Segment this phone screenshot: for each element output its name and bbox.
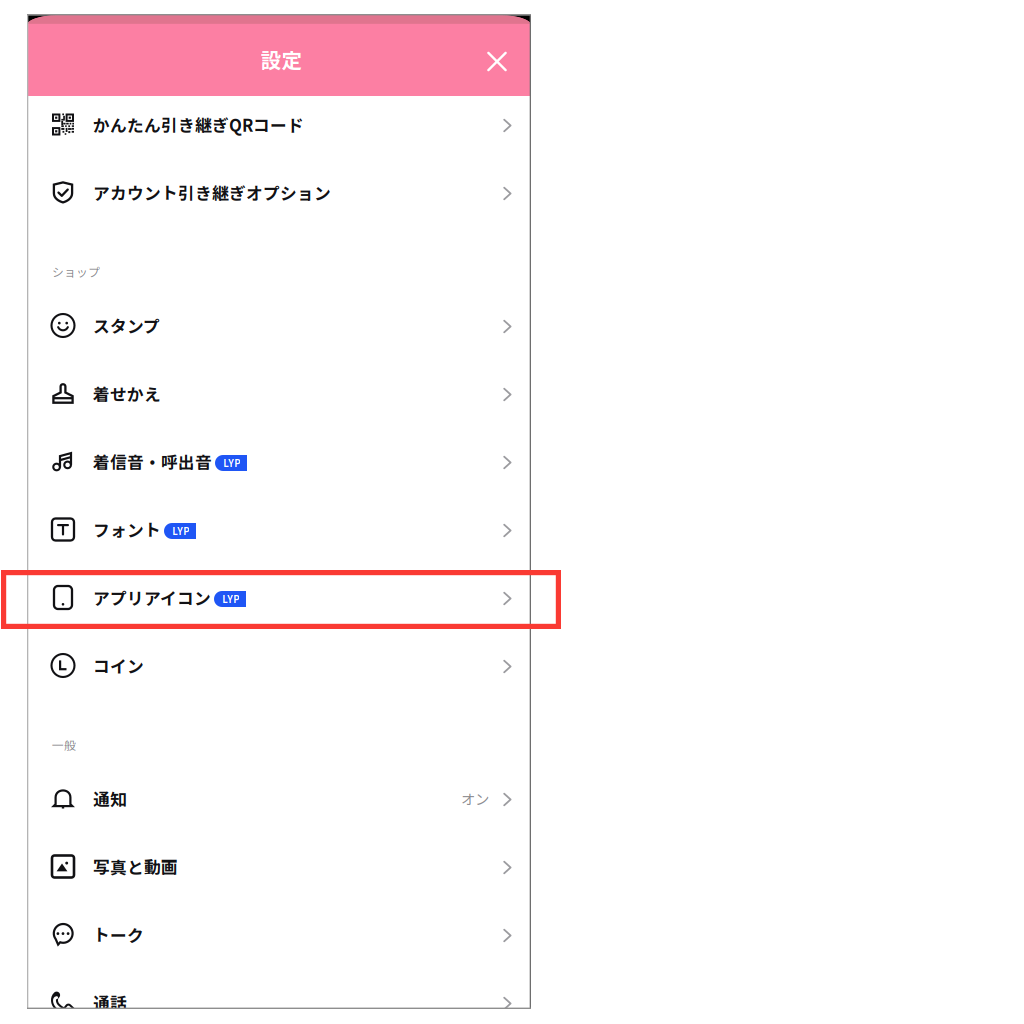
staticText: 通話 xyxy=(93,990,127,1015)
button[interactable]: 通知 xyxy=(27,764,531,832)
button[interactable]: コイン xyxy=(27,631,531,699)
staticText: 着信音・呼出音 xyxy=(93,449,212,474)
staticText: LYP xyxy=(172,524,189,538)
staticText: ショップ xyxy=(52,263,100,280)
staticText: 写真と動画 xyxy=(93,854,178,879)
staticText: アカウント引き継ぎオプション xyxy=(93,180,331,205)
staticText: LYP xyxy=(222,592,239,606)
staticText: 設定 xyxy=(260,44,302,74)
button[interactable]: アプリアイコン xyxy=(27,563,531,631)
button[interactable]: 通話 xyxy=(27,968,531,1024)
staticText: 一般 xyxy=(52,736,76,753)
button[interactable]: かんたん引き継ぎQRコード xyxy=(27,90,531,158)
staticText: LYP xyxy=(223,456,240,470)
staticText: 通知 xyxy=(93,786,127,811)
staticText: コイン xyxy=(93,653,144,678)
button[interactable]: 写真と動画 xyxy=(27,832,531,900)
staticText: 着せかえ xyxy=(93,381,161,406)
staticText: トーク xyxy=(93,922,144,947)
staticText: フォント xyxy=(93,517,161,542)
button[interactable]: 着信音・呼出音 xyxy=(27,427,531,495)
staticText: かんたん引き継ぎQRコード xyxy=(93,112,304,137)
button[interactable]: 閉じる xyxy=(475,39,519,83)
button[interactable]: フォント xyxy=(27,495,531,563)
staticText: オン xyxy=(461,788,489,809)
staticText: アプリアイコン xyxy=(93,585,211,610)
button[interactable]: 着せかえ xyxy=(27,359,531,427)
button[interactable]: トーク xyxy=(27,900,531,968)
staticText: スタンプ xyxy=(93,313,160,338)
button[interactable]: スタンプ xyxy=(27,291,531,359)
button[interactable]: アカウント引き継ぎオプション xyxy=(27,158,531,226)
